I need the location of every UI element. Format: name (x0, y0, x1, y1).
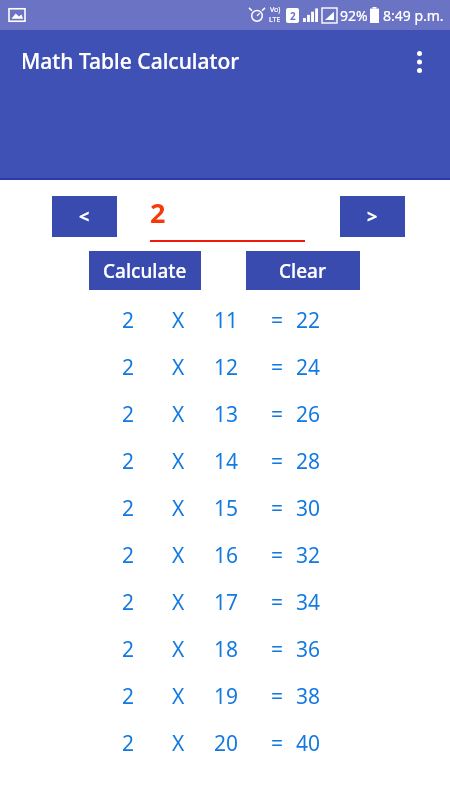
staticText: 2 (122, 729, 135, 758)
staticText: X (172, 494, 185, 523)
staticText: 26 (296, 400, 321, 429)
button[interactable]: 2 (0, 297, 450, 344)
button[interactable]: 2 (0, 344, 450, 391)
staticText: X (172, 541, 185, 570)
staticText: 2 (122, 306, 135, 335)
staticText: 30 (296, 494, 321, 523)
staticText: Calculate (103, 258, 187, 284)
staticText: X (172, 729, 185, 758)
staticText: 2 (122, 353, 135, 382)
staticText: X (172, 635, 185, 664)
button[interactable]: 2 (0, 485, 450, 532)
staticText: 19 (214, 682, 252, 711)
button[interactable]: 2 (0, 626, 450, 673)
staticText: X (172, 400, 185, 429)
staticText: = (271, 682, 284, 711)
staticText: X (172, 682, 185, 711)
staticText: X (172, 353, 185, 382)
button[interactable]: 2 (0, 391, 450, 438)
staticText: 2 (122, 588, 135, 617)
staticText: 40 (296, 729, 321, 758)
button[interactable]: 2 (0, 673, 450, 720)
staticText: = (271, 541, 284, 570)
staticText: 17 (214, 588, 252, 617)
button[interactable]: 2 (0, 720, 450, 767)
staticText: LTE (269, 15, 281, 25)
staticText: 18 (214, 635, 252, 664)
staticText: 92% (340, 6, 368, 25)
staticText: 2 (122, 447, 135, 476)
staticText: 15 (214, 494, 252, 523)
staticText: > (367, 204, 378, 229)
button[interactable]: More options (402, 45, 436, 79)
staticText: 20 (214, 729, 252, 758)
button[interactable]: Clear (246, 251, 360, 290)
staticText: 2 (290, 9, 296, 23)
staticText: = (271, 588, 284, 617)
staticText: < (79, 204, 90, 229)
staticText: 2 (150, 194, 166, 231)
staticText: 38 (296, 682, 321, 711)
button[interactable]: Calculate (89, 251, 201, 290)
staticText: = (271, 729, 284, 758)
staticText: = (271, 635, 284, 664)
staticText: = (271, 494, 284, 523)
staticText: 34 (296, 588, 321, 617)
staticText: Vo) (270, 5, 281, 15)
staticText: X (172, 447, 185, 476)
staticText: 2 (122, 400, 135, 429)
staticText: 24 (296, 353, 321, 382)
staticText: 28 (296, 447, 321, 476)
staticText: = (271, 400, 284, 429)
staticText: = (271, 447, 284, 476)
button[interactable]: 2 (150, 194, 305, 242)
button[interactable]: 2 (0, 579, 450, 626)
staticText: 2 (122, 635, 135, 664)
button[interactable]: 2 (0, 532, 450, 579)
staticText: 16 (214, 541, 252, 570)
staticText: 11 (214, 306, 252, 335)
staticText: 2 (122, 682, 135, 711)
staticText: 2 (122, 541, 135, 570)
staticText: Clear (279, 258, 327, 284)
button[interactable]: Previous (52, 196, 117, 237)
staticText: = (271, 306, 284, 335)
button[interactable]: 2 (0, 438, 450, 485)
staticText: 12 (214, 353, 252, 382)
staticText: X (172, 306, 185, 335)
staticText: 22 (296, 306, 321, 335)
staticText: 13 (214, 400, 252, 429)
staticText: 8:49 p.m. (383, 6, 444, 25)
staticText: = (271, 353, 284, 382)
staticText: 36 (296, 635, 321, 664)
staticText: 14 (214, 447, 252, 476)
staticText: 32 (296, 541, 321, 570)
button[interactable]: Next (340, 196, 405, 237)
staticText: X (172, 588, 185, 617)
staticText: Math Table Calculator (21, 47, 240, 76)
staticText: 2 (122, 494, 135, 523)
